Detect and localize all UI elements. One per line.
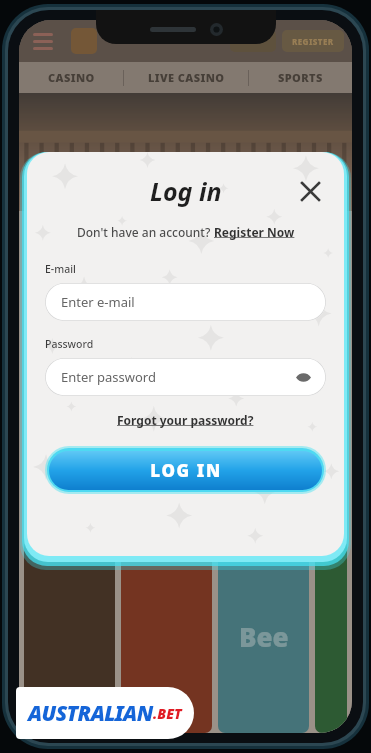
button[interactable]: 3 [218,443,309,499]
staticText: Password [45,337,94,351]
staticText: .BET [153,704,182,723]
button[interactable]: Register Now [214,224,295,240]
staticText: Log in [150,174,222,208]
staticText: SPORTS [278,70,323,85]
button[interactable]: Bee [218,540,309,733]
staticText: LIVE CASINO [148,70,225,85]
staticText: LOG IN [150,459,222,482]
staticText: AUSTRALIAN [28,699,153,728]
staticText: Enter e-mail [61,293,135,311]
staticText: Bee [239,619,289,654]
button[interactable]: 1 [24,443,115,499]
staticText: CASINO [48,70,95,85]
staticText: 3 [256,454,272,489]
button[interactable]: Enter e-mail [45,283,326,321]
button[interactable] [315,540,347,733]
staticText: REGISTER [292,36,334,47]
staticText: 2 [159,454,175,489]
button[interactable]: LIVE CASINO [124,62,248,93]
button[interactable]: Login [230,30,276,52]
staticText: Enter password [61,368,156,386]
button[interactable]: CASINO [19,62,123,93]
button[interactable]: Forgot your password? [117,412,254,428]
button[interactable]: Enter password [45,358,326,396]
staticText: Register Now [214,224,295,240]
button[interactable] [121,540,212,733]
button[interactable] [24,540,115,733]
button[interactable]: Close [294,175,326,207]
staticText: 4 [323,454,339,489]
staticText: E-mail [45,262,76,276]
staticText: Forgot your password? [117,412,254,428]
button[interactable]: Show password [292,366,314,388]
button[interactable]: Menu [29,29,57,54]
button[interactable]: 4 [315,443,347,499]
button[interactable]: REGISTER [282,30,344,52]
button[interactable]: LOG IN [45,446,326,494]
staticText: Don't have an account? [77,224,214,240]
staticText: 1 [62,454,78,489]
button[interactable]: SPORTS [249,62,352,93]
button[interactable]: 2 [121,443,212,499]
button[interactable]: Home [71,28,97,54]
